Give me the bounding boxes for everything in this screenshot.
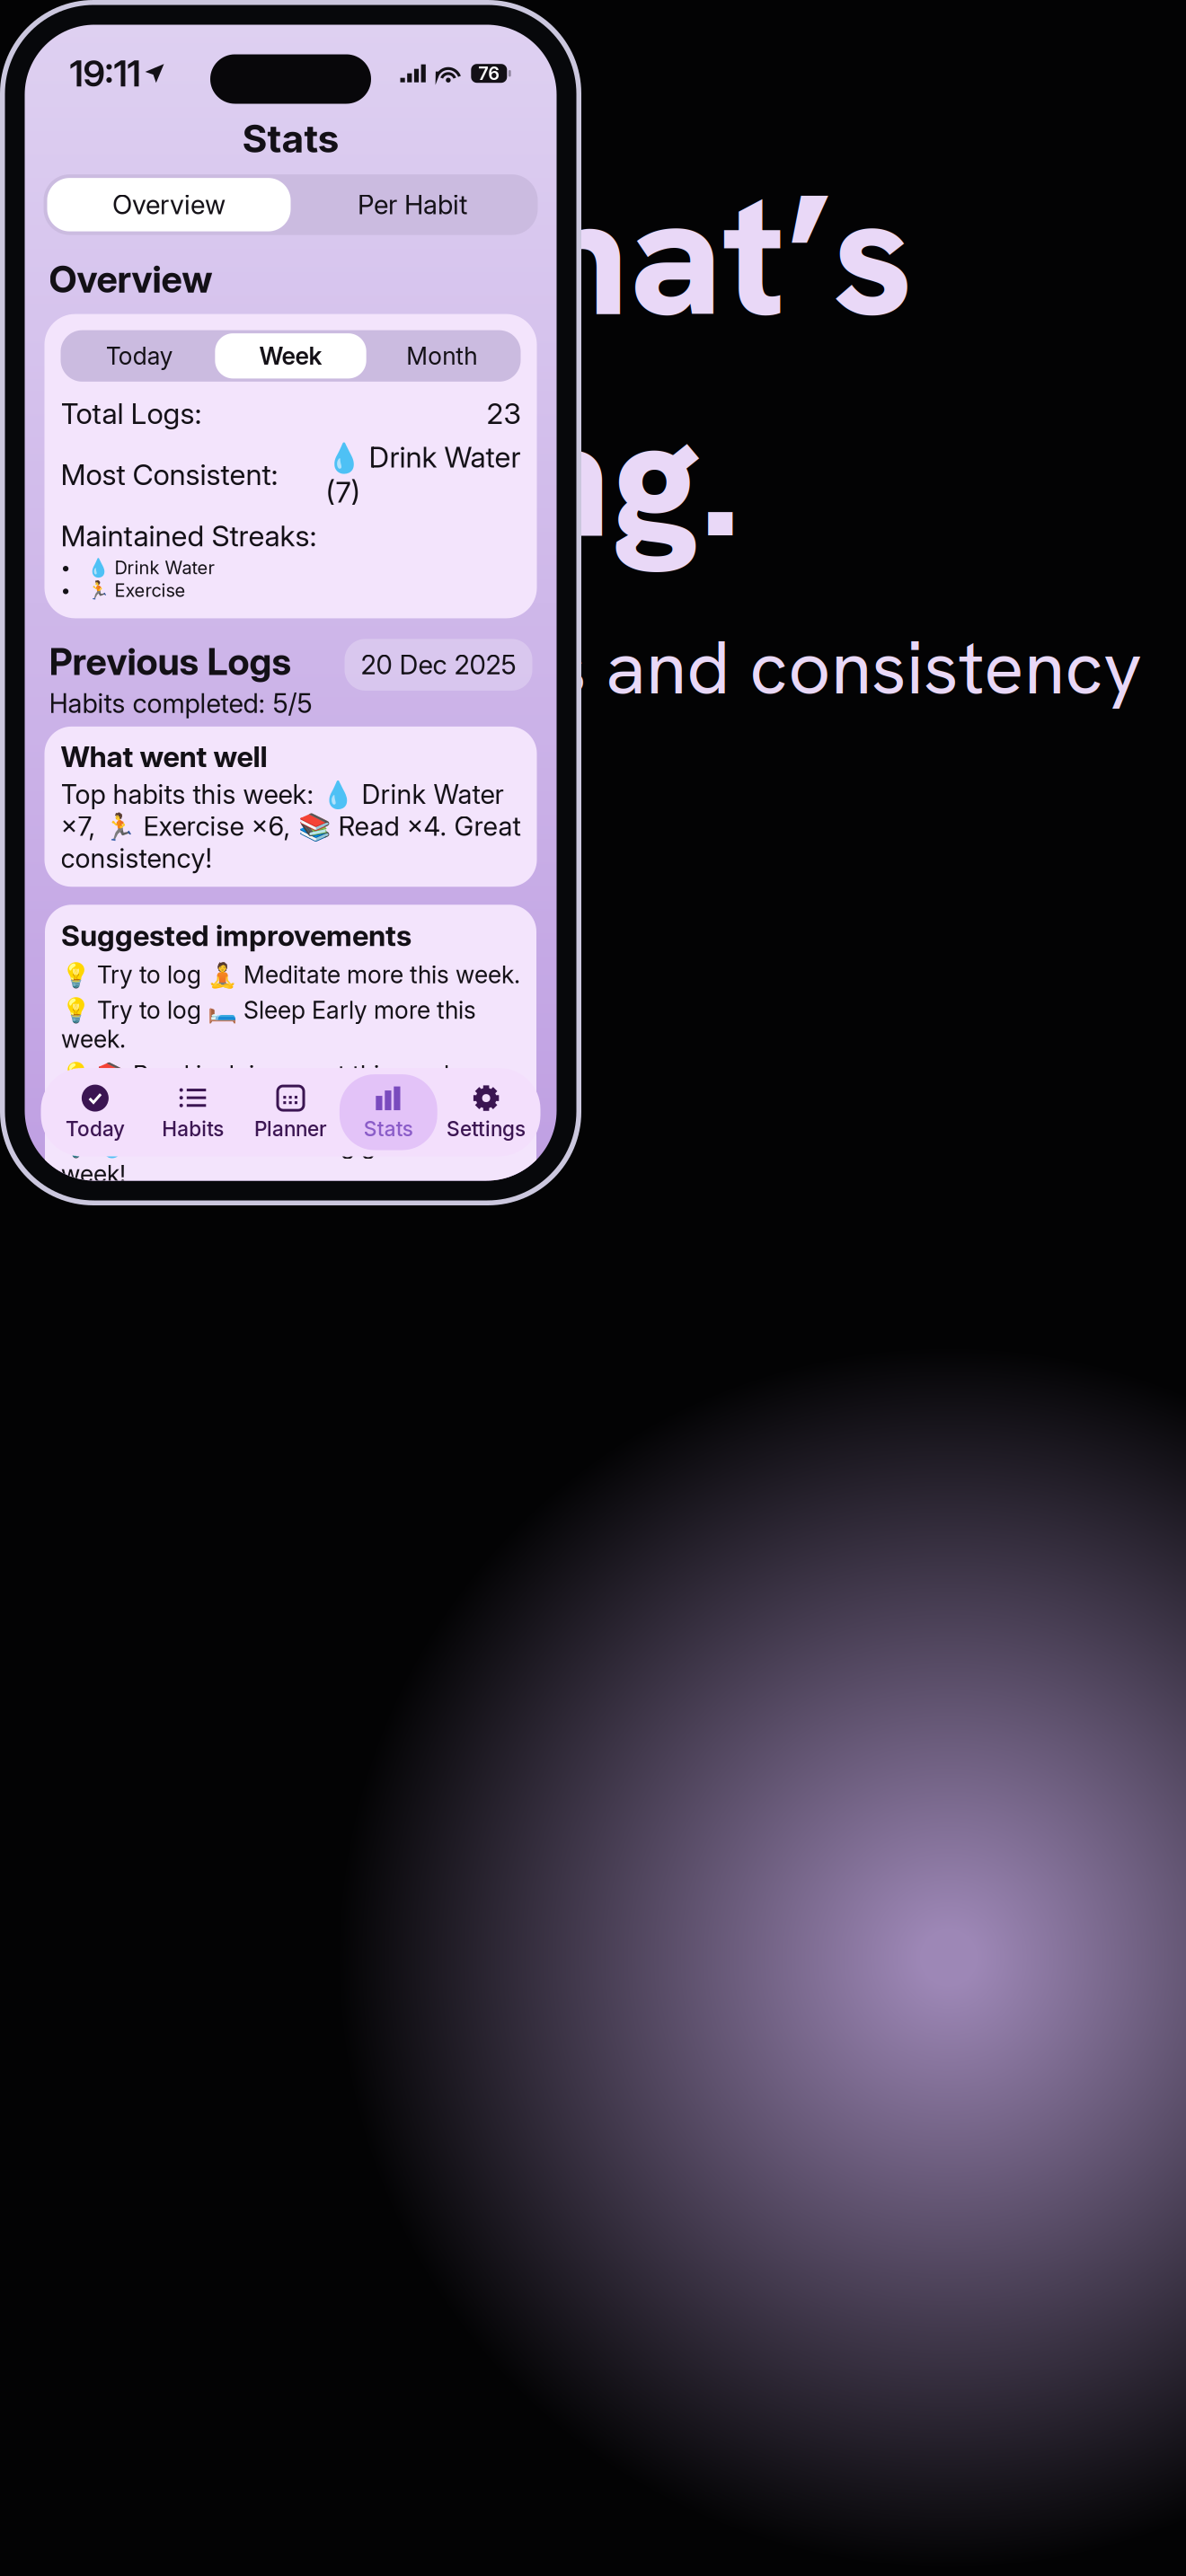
staticText: • 🏃 Exercise (61, 579, 186, 601)
staticText: 76 (478, 63, 500, 84)
staticText: What went well (61, 739, 267, 774)
staticText: 23 (487, 396, 521, 431)
button[interactable]: Overview (47, 178, 291, 231)
button[interactable]: Today (64, 333, 215, 378)
staticText: Settings (447, 1117, 526, 1141)
staticText: 💡 💧 Drink Water is doing great this week… (61, 1130, 465, 1188)
staticText: Per Habit (358, 189, 467, 221)
staticText: Previous Logs (49, 639, 292, 684)
button[interactable]: Stats (340, 1074, 437, 1150)
staticText: 💡 Try to log 🧘 Meditate more this week. (61, 960, 520, 989)
staticText: Overview (112, 189, 226, 221)
staticText: Stats (364, 1117, 413, 1141)
staticText: Maintained Streaks: (61, 518, 317, 553)
staticText: Today (65, 1117, 125, 1141)
staticText: 💡 📚 Read is doing great this week. (61, 1060, 463, 1089)
staticText: 20 Dec 2025 (361, 649, 516, 681)
staticText: Stats (242, 115, 339, 162)
staticText: Today (106, 341, 173, 370)
staticText: See what’s (75, 144, 913, 365)
staticText: Total Logs: (61, 396, 202, 431)
staticText: Weekly insights and consistency (75, 619, 1142, 716)
staticText: Week (259, 341, 322, 370)
staticText: Habits (162, 1117, 224, 1141)
button[interactable]: Month (366, 333, 518, 378)
staticText: 💧 Drink Water (7) (326, 440, 521, 509)
staticText: working. (75, 365, 740, 587)
button[interactable]: Planner (242, 1074, 340, 1150)
staticText: Habits completed: 5/5 (49, 687, 312, 719)
button[interactable]: Habits (144, 1074, 242, 1150)
button[interactable]: Settings (437, 1074, 535, 1150)
staticText: Overview (49, 257, 212, 301)
staticText: Planner (254, 1117, 327, 1141)
staticText: Most Consistent: (61, 457, 278, 492)
staticText: Suggested improvements (61, 918, 412, 953)
staticText: 19:11 (70, 52, 141, 95)
staticText: Month (406, 341, 477, 370)
staticText: 💡 🏃 Exercise is doing great this week! (61, 1095, 500, 1124)
staticText: highlights. (75, 716, 404, 813)
staticText: • 💧 Drink Water (61, 557, 214, 579)
staticText: Top habits this week: 💧 Drink Water ×7, … (61, 778, 521, 874)
button[interactable]: Week (215, 333, 366, 378)
staticText: 💡 Try to log 🛏️ Sleep Early more this we… (61, 995, 476, 1053)
button[interactable]: Today (46, 1074, 144, 1150)
button[interactable]: Per Habit (291, 178, 534, 231)
